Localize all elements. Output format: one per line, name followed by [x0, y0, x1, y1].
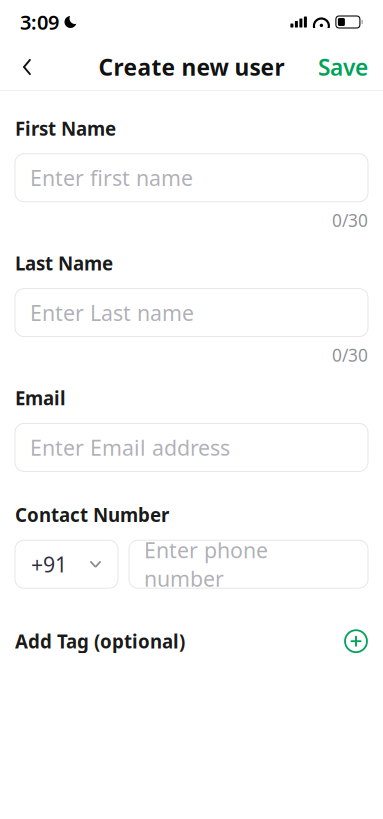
- staticText: Last Name: [15, 251, 113, 276]
- staticText: Email: [15, 386, 66, 410]
- staticText: 0/30: [332, 344, 368, 367]
- staticText: Create new user: [98, 52, 284, 82]
- staticText: Save: [318, 52, 368, 82]
- staticText: Enter first name: [30, 164, 193, 192]
- button[interactable]: Enter Last name: [15, 289, 368, 337]
- button[interactable]: Enter first name: [15, 154, 368, 202]
- staticText: First Name: [15, 116, 116, 141]
- staticText: Contact Number: [15, 502, 169, 527]
- staticText: Enter Email address: [30, 433, 230, 461]
- staticText: Enter Last name: [30, 298, 194, 327]
- button[interactable]: Back: [5, 49, 49, 85]
- staticText: 3:09: [20, 9, 59, 35]
- button[interactable]: Add Tag: [15, 626, 368, 656]
- button[interactable]: Country code, +91: [15, 540, 118, 588]
- button[interactable]: Save: [308, 49, 378, 85]
- staticText: 0/30: [332, 209, 368, 232]
- button[interactable]: Enter Email address: [15, 423, 368, 471]
- staticText: +91: [31, 550, 67, 578]
- staticText: Enter phone number: [144, 536, 268, 593]
- button[interactable]: Enter phone number: [129, 540, 368, 588]
- staticText: Add Tag (optional): [15, 629, 185, 654]
